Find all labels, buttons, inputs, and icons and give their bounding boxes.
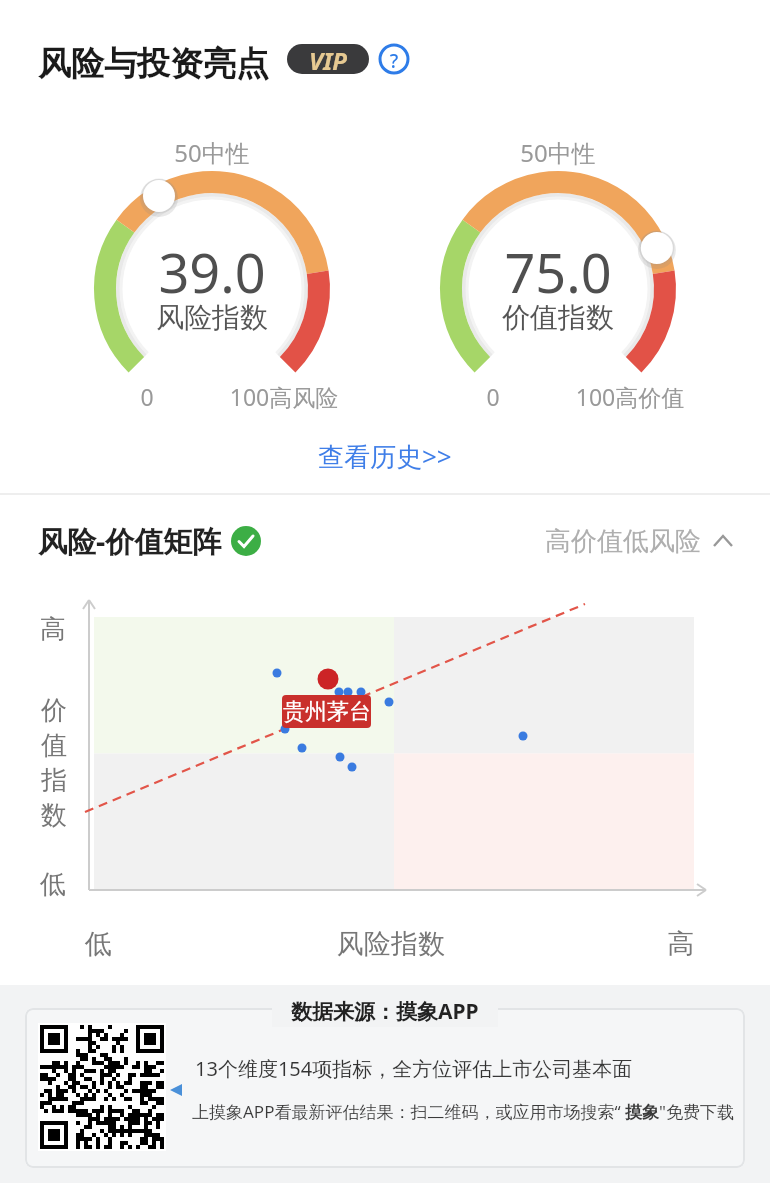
button[interactable]: ? <box>379 44 409 74</box>
button[interactable]: 查看历史>> <box>318 438 452 474</box>
staticText: 0 <box>453 381 533 412</box>
staticText: 100高价值 <box>550 381 710 412</box>
staticText: 低 <box>83 927 113 961</box>
button[interactable]: 贵州茅台 <box>282 695 371 728</box>
staticText: 75.0 <box>458 235 658 309</box>
staticText: ? <box>379 48 409 74</box>
staticText: 值 <box>39 729 69 762</box>
staticText: 39.0 <box>112 235 312 309</box>
staticText: VIP <box>309 44 347 74</box>
staticText: 指 <box>39 764 69 797</box>
staticText: 价 <box>39 694 69 727</box>
staticText: 数 <box>39 799 69 832</box>
staticText: 上摸象APP看最新评估结果：扫二维码，或应用市场搜索“ 摸象"免费下载 <box>192 1100 770 1123</box>
staticText: 风险指数 <box>112 300 312 335</box>
staticText: 风险-价值矩阵 <box>38 521 338 561</box>
staticText: 0 <box>107 381 187 412</box>
staticText: 贵州茅台 <box>283 698 371 726</box>
staticText: 数据来源：摸象APP <box>291 997 479 1026</box>
staticText: 高 <box>38 613 68 646</box>
button[interactable]: VIP <box>287 44 369 74</box>
staticText: 高价值低风险 <box>545 525 705 557</box>
staticText: 查看历史>> <box>318 438 452 474</box>
staticText: 13个维度154项指标，全方位评估上市公司基本面 <box>195 1055 770 1082</box>
staticText: 高 <box>666 927 696 961</box>
staticText: 风险指数 <box>336 927 446 961</box>
staticText: 风险与投资亮点 <box>38 43 338 85</box>
staticText: 低 <box>38 868 68 901</box>
staticText: 价值指数 <box>458 300 658 335</box>
button[interactable]: 高价值低风险 <box>545 525 735 557</box>
staticText: 50中性 <box>458 136 658 169</box>
staticText: 100高风险 <box>204 381 364 412</box>
staticText: 50中性 <box>112 136 312 169</box>
